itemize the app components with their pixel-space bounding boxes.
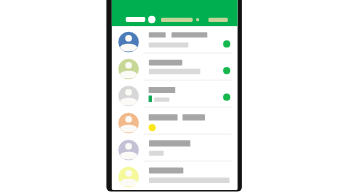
button[interactable]: Conversation 3 xyxy=(112,80,238,107)
button[interactable]: Search xyxy=(145,12,159,26)
button[interactable]: Conversation 4 xyxy=(112,107,238,134)
button[interactable]: Conversation 5 xyxy=(112,134,238,161)
button[interactable]: Conversation 2 xyxy=(112,53,238,80)
button[interactable]: Navigation menu xyxy=(120,12,136,26)
button[interactable]: Conversation 1 xyxy=(112,26,238,53)
button[interactable]: Conversation 6 xyxy=(112,161,238,188)
button[interactable]: More options xyxy=(203,12,233,26)
